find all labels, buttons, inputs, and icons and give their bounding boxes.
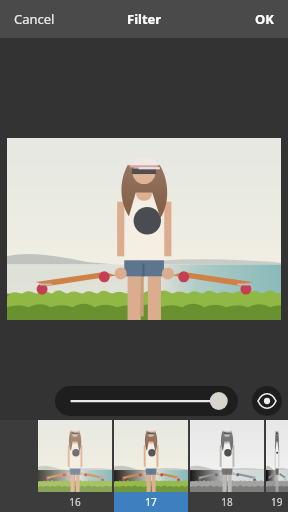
button[interactable]: 18: [190, 420, 264, 512]
button[interactable]: Toggle original preview: [252, 386, 282, 416]
staticText: Cancel: [14, 10, 55, 28]
staticText: OK: [255, 10, 274, 28]
staticText: 16: [69, 495, 81, 509]
button[interactable]: 19: [266, 420, 288, 512]
button[interactable]: Filter strength slider: [55, 386, 238, 416]
staticText: 18: [221, 495, 233, 509]
button[interactable]: Cancel: [0, 0, 69, 38]
staticText: Filter: [127, 10, 162, 28]
button[interactable]: 17: [114, 420, 188, 512]
button[interactable]: OK: [241, 0, 288, 38]
staticText: 19: [271, 495, 283, 509]
staticText: 17: [145, 495, 157, 509]
button[interactable]: 16: [38, 420, 112, 512]
